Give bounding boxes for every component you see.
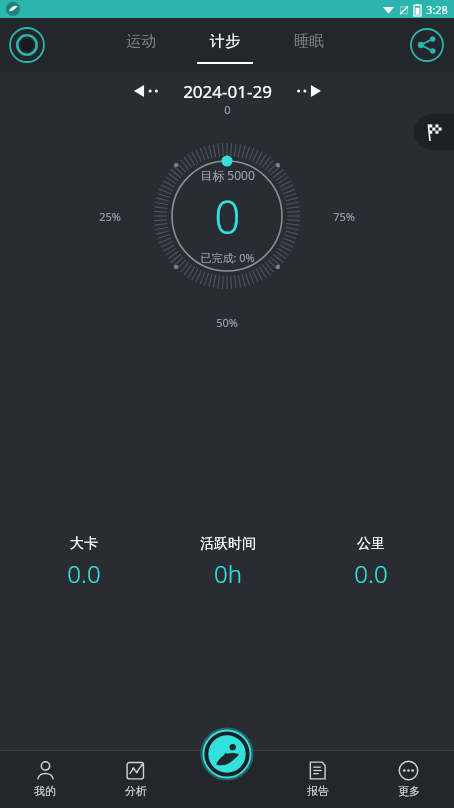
staticText: 3:28 — [426, 2, 448, 17]
staticText: 已完成: 0% — [200, 250, 255, 265]
button[interactable]: 报告 — [272, 750, 363, 808]
staticText: 活跃时间 — [200, 535, 256, 553]
staticText: 更多 — [398, 784, 420, 798]
staticText: 0h — [214, 557, 242, 590]
staticText: 50% — [216, 315, 238, 330]
button[interactable]: 分析 — [90, 750, 181, 808]
button[interactable]: Next day — [282, 76, 326, 106]
staticText: 2024-01-29 — [183, 80, 272, 103]
button[interactable]: 运动 — [113, 18, 169, 72]
staticText: 公里 — [357, 535, 385, 553]
staticText: 分析 — [125, 784, 147, 798]
staticText: 75% — [333, 209, 355, 224]
staticText: 睡眠 — [294, 32, 324, 51]
button[interactable]: 我的 — [0, 750, 90, 808]
button[interactable]: Record — [8, 26, 46, 64]
staticText: 我的 — [34, 784, 56, 798]
button[interactable]: 计步 — [197, 18, 253, 72]
button[interactable]: Share — [408, 26, 446, 64]
staticText: 计步 — [210, 32, 240, 51]
button[interactable]: 公里 — [299, 535, 442, 590]
button[interactable]: 活跃时间 — [156, 535, 299, 590]
staticText: 0 — [214, 185, 241, 248]
staticText: 运动 — [126, 32, 156, 51]
staticText: 0.0 — [354, 557, 388, 590]
button[interactable]: Goal flag — [414, 114, 454, 150]
staticText: 0 — [224, 102, 231, 117]
staticText: 25% — [99, 209, 121, 224]
staticText: 0.0 — [67, 557, 101, 590]
staticText: 大卡 — [70, 535, 98, 553]
button[interactable]: Previous day — [129, 76, 173, 106]
staticText: 目标 5000 — [200, 167, 255, 183]
button[interactable]: 大卡 — [12, 535, 156, 590]
button[interactable]: Start activity — [201, 728, 253, 780]
staticText: 报告 — [307, 784, 329, 798]
button[interactable]: 更多 — [363, 750, 454, 808]
button[interactable]: 睡眠 — [281, 18, 337, 72]
